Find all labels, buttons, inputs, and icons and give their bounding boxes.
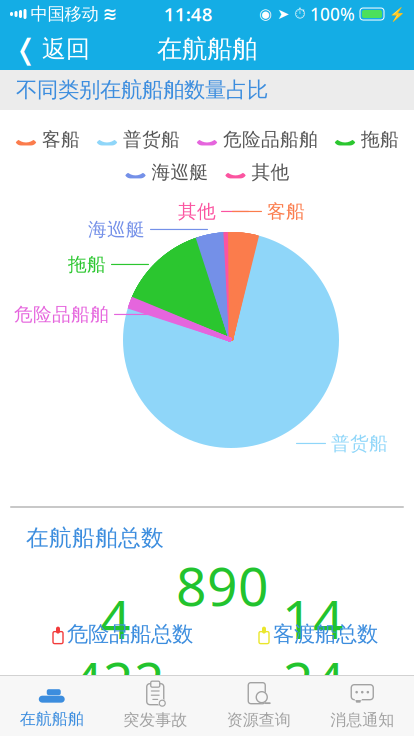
staticText: 突发事故 [123,710,187,730]
staticText: 消息通知 [330,710,394,730]
button[interactable]: 资源查询 [207,674,310,736]
staticText: ⏱ [294,7,305,21]
staticText: ◉ [259,6,272,22]
staticText: 拖船 [68,253,106,276]
staticText: 中国移动 [30,3,98,25]
staticText: 在航船舶 [157,33,257,64]
staticText: 客船 [42,128,80,151]
staticText: 890 [176,550,269,621]
staticText: ➤ [277,6,289,22]
staticText: 14 [282,583,344,654]
staticText: 客船 [267,200,305,223]
button[interactable]: 消息通知 [310,674,414,736]
staticText: 拖船 [361,128,399,151]
staticText: ⚡ [389,6,406,22]
button[interactable]: 突发事故 [103,674,207,736]
staticText: 11:48 [164,2,213,26]
staticText: 不同类别在航船舶数量占比 [16,77,268,103]
staticText: 在航船舶 [20,709,84,729]
staticText: 资源查询 [227,710,291,730]
staticText: 100% [310,2,355,25]
button[interactable]: ❬ [0,25,102,73]
staticText: 危险品船舶 [223,128,318,151]
staticText: 422 [72,645,165,716]
staticText: 海巡艇 [88,218,145,241]
staticText: ❬ [14,33,37,65]
staticText: ≋ [102,4,117,24]
staticText: 24 [283,645,345,716]
button[interactable]: 在航船舶 [0,675,103,736]
staticText: 危险品船舶 [14,303,109,326]
staticText: 返回 [42,34,90,64]
staticText: 其他 [178,200,216,223]
staticText: 海巡艇 [151,161,208,184]
staticText: 其他 [251,161,289,184]
staticText: 普货船 [123,128,180,151]
staticText: 4 [100,583,131,654]
staticText: 在航船舶总数 [26,524,164,552]
staticText: 普货船 [331,432,388,455]
staticText: 危险品船总数 [67,621,193,647]
staticText: 客渡船总数 [273,621,378,647]
